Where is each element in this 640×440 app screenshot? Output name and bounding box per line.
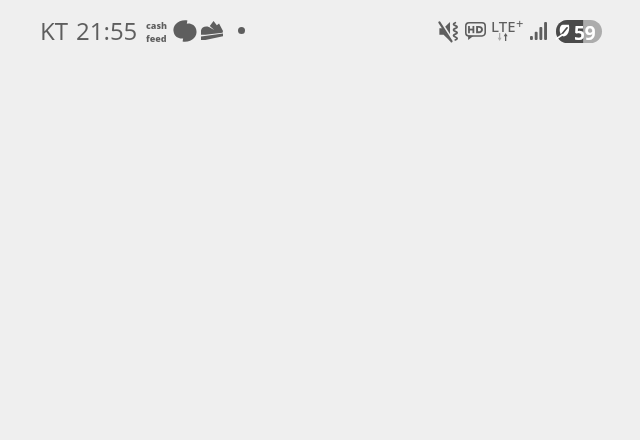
other: Battery 59 percent (556, 20, 602, 43)
other: Signal (530, 22, 547, 40)
staticText: KT (40, 14, 69, 47)
other: More notifications (238, 27, 245, 34)
staticText: 59 (574, 20, 596, 43)
staticText: 21:55 (76, 14, 138, 47)
button[interactable]: Status icons (439, 19, 602, 43)
staticText: + (516, 14, 521, 32)
staticText: feed (146, 32, 167, 44)
other: Step counter (201, 21, 223, 40)
other: Cash feed (173, 20, 197, 42)
other: HD voice (465, 22, 486, 40)
staticText: cash (146, 19, 168, 31)
staticText: LTE (491, 16, 516, 36)
button[interactable]: KT (40, 14, 245, 47)
other: Vibrate (439, 22, 458, 41)
